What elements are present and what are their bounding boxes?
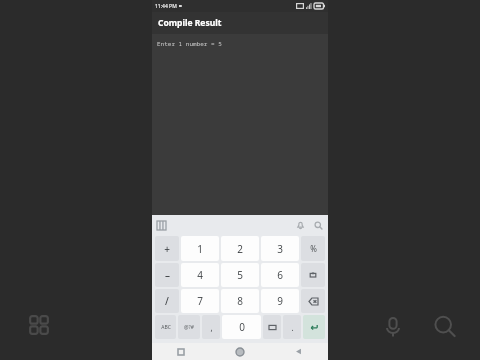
- button[interactable]: Search: [430, 312, 460, 342]
- staticText: 9: [277, 294, 283, 308]
- button[interactable]: 8: [221, 289, 259, 313]
- staticText: /: [165, 294, 169, 308]
- button[interactable]: 2: [221, 236, 259, 261]
- button[interactable]: Notifications: [294, 219, 306, 231]
- staticText: Enter 1 number = 5: [157, 40, 222, 48]
- staticText: %: [310, 243, 317, 254]
- button[interactable]: Enter: [303, 315, 325, 339]
- button[interactable]: +: [155, 236, 179, 261]
- staticText: 1: [197, 242, 203, 256]
- staticText: 2: [237, 242, 243, 256]
- staticText: 11:44 PM: [155, 3, 177, 10]
- button[interactable]: –: [155, 263, 179, 287]
- button[interactable]: Clipboard: [301, 263, 325, 287]
- button[interactable]: 1: [181, 236, 219, 261]
- staticText: ABC: [161, 324, 171, 331]
- staticText: 7: [197, 294, 203, 308]
- button[interactable]: Backspace: [301, 289, 325, 313]
- button[interactable]: App drawer: [22, 308, 56, 342]
- staticText: Compile Result: [158, 17, 222, 29]
- button[interactable]: 6: [261, 263, 299, 287]
- staticText: 8: [237, 294, 243, 308]
- button[interactable]: Keyboard layout: [156, 220, 167, 231]
- button[interactable]: Home: [210, 343, 269, 360]
- button[interactable]: 5: [221, 263, 259, 287]
- staticText: 5: [237, 268, 243, 282]
- staticText: 6: [277, 268, 283, 282]
- button[interactable]: 4: [181, 263, 219, 287]
- button[interactable]: 7: [181, 289, 219, 313]
- button[interactable]: 0: [222, 315, 261, 339]
- staticText: 3: [277, 242, 283, 256]
- button[interactable]: 3: [261, 236, 299, 261]
- button[interactable]: Search: [312, 219, 324, 231]
- staticText: @?#: [184, 324, 194, 331]
- staticText: –: [165, 268, 170, 282]
- staticText: ,: [210, 322, 213, 333]
- staticText: .: [291, 322, 294, 333]
- staticText: +: [164, 242, 170, 256]
- button[interactable]: 9: [261, 289, 299, 313]
- button[interactable]: %: [301, 236, 325, 261]
- button[interactable]: Voice search: [378, 312, 408, 342]
- button[interactable]: Emoji: [263, 315, 281, 339]
- staticText: 0: [239, 320, 245, 334]
- button[interactable]: @?#: [178, 315, 200, 339]
- button[interactable]: Recents: [152, 343, 210, 360]
- button[interactable]: ,: [202, 315, 220, 339]
- button[interactable]: /: [155, 289, 179, 313]
- button[interactable]: .: [283, 315, 301, 339]
- button[interactable]: Back: [269, 343, 328, 360]
- button[interactable]: ABC: [155, 315, 176, 339]
- staticText: 4: [197, 268, 203, 282]
